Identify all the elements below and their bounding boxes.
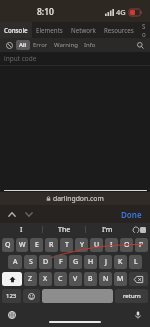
button[interactable]: S [24,255,37,269]
button[interactable]: Console [0,22,32,38]
button[interactable]: I'm [86,223,128,236]
button[interactable]: G [69,255,82,269]
staticText: M [117,274,124,284]
button[interactable]: F [54,255,67,269]
staticText: Network [71,26,96,34]
button[interactable]: L [129,255,142,269]
staticText: A [13,257,18,267]
staticText: Sources [142,22,146,38]
staticText: input code [4,54,37,63]
button[interactable]: R [45,238,58,252]
button[interactable]: darlingdon.com [0,192,150,205]
button[interactable]: Warning [51,40,81,50]
button[interactable]: X [39,272,52,286]
button[interactable]: Emoji [23,289,40,303]
button[interactable]: P [135,238,148,252]
staticText: X [43,274,48,284]
button[interactable]: O [120,238,133,252]
button[interactable]: U [90,238,103,252]
staticText: B [88,274,93,284]
staticText: All [19,41,27,49]
button[interactable]: Previous [5,208,18,221]
staticText: 8:10 [37,6,54,18]
staticText: C [58,274,63,284]
staticText: P [139,240,144,250]
staticText: T [65,240,69,250]
staticText: N [103,274,109,284]
button[interactable]: All [16,40,30,50]
staticText: R [49,240,54,250]
staticText: Error [33,41,48,49]
staticText: Console [4,26,28,34]
staticText: I'm [102,225,113,235]
button[interactable]: Q [2,238,14,252]
staticText: Elements [36,26,63,34]
staticText: E [35,240,39,250]
button[interactable]: C [54,272,67,286]
button[interactable]: M [114,272,127,286]
button[interactable]: Elements [32,22,67,38]
button[interactable]: T [60,238,73,252]
button[interactable]: Resources [100,22,138,38]
button[interactable]: K [114,255,127,269]
staticText: U [94,240,100,250]
staticText: The [58,225,71,235]
button[interactable]: The [43,223,85,236]
button[interactable]: N [99,272,112,286]
button[interactable]: W [16,238,28,252]
button[interactable]: Shift [2,272,22,286]
staticText: Z [28,274,33,284]
button[interactable]: Backspace [129,272,148,286]
staticText: H [88,257,94,267]
button[interactable]: Space [42,289,113,303]
staticText: F [59,257,63,267]
staticText: V [73,274,78,284]
button[interactable]: input code [0,52,150,65]
staticText: W [19,240,26,250]
staticText: L [134,257,138,267]
button[interactable]: Sources [138,22,150,38]
staticText: G [73,257,79,267]
staticText: Done [121,209,142,220]
staticText: Info [84,41,96,49]
button[interactable]: E [30,238,43,252]
button[interactable]: Z [24,272,37,286]
staticText: K [118,257,123,267]
staticText: J [105,257,107,267]
button[interactable]: return [115,289,148,303]
button[interactable]: 123 [2,289,21,303]
button[interactable]: Error [30,40,51,50]
button[interactable]: Network [67,22,100,38]
button[interactable]: Y [75,238,88,252]
button[interactable]: D [39,255,52,269]
button[interactable]: B [84,272,97,286]
staticText: I [110,240,113,250]
button[interactable]: Emoji and clipboard [128,223,150,236]
button[interactable]: H [84,255,97,269]
button[interactable]: I [0,223,42,236]
staticText: S [29,257,33,267]
staticText: Q [5,240,11,250]
button[interactable]: A [8,255,22,269]
button[interactable]: Info [81,40,99,50]
staticText: Resources [104,26,134,34]
staticText: D [43,257,49,267]
button[interactable]: Next [22,208,35,221]
staticText: O [124,240,130,250]
staticText: return [123,292,141,300]
button[interactable]: J [99,255,112,269]
staticText: 123 [6,292,17,300]
staticText: 4G [116,7,126,17]
button[interactable]: Clear console [4,40,14,50]
staticText: Y [80,240,84,250]
button[interactable]: I [105,238,118,252]
staticText: darlingdon.com [53,194,104,203]
staticText: I [20,225,23,235]
button[interactable]: Voice input [131,308,145,322]
button[interactable]: Search [135,40,145,50]
button[interactable]: Done [113,206,150,223]
staticText: Warning [54,41,78,49]
button[interactable]: V [69,272,82,286]
button[interactable]: Change keyboard language [5,308,19,322]
